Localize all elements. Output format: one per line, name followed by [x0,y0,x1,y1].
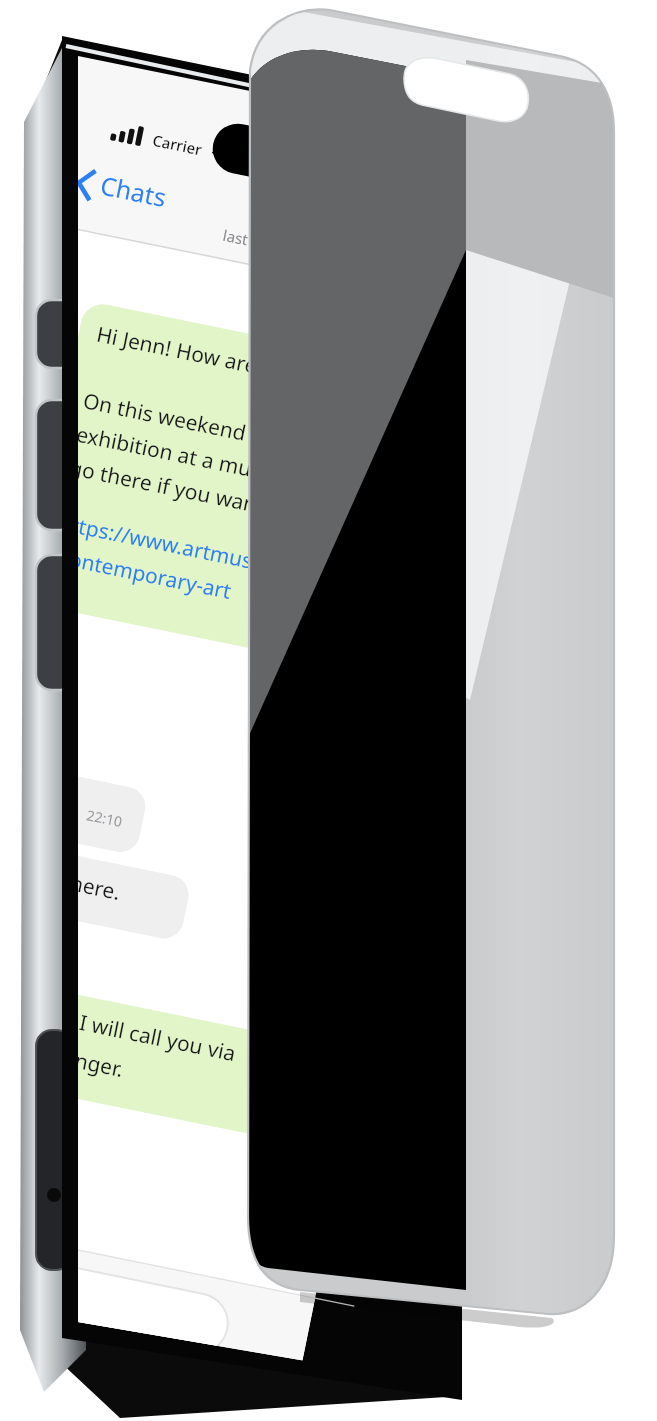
button[interactable]: Screen protector product photo [0,0,657,1421]
other: Screen protector product photo [0,0,657,1421]
